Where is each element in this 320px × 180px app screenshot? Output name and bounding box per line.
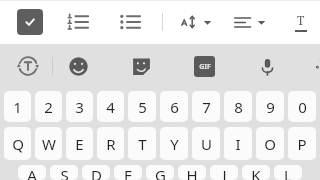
staticText: 9: [266, 97, 275, 117]
staticText: U: [201, 134, 212, 154]
button[interactable]: 6: [160, 91, 188, 122]
button[interactable]: E: [66, 127, 93, 160]
button[interactable]: Text size: [178, 8, 213, 36]
button[interactable]: W: [35, 127, 62, 160]
button[interactable]: Numbered list: [64, 8, 92, 36]
button[interactable]: I: [224, 127, 252, 160]
button[interactable]: 2: [35, 91, 62, 122]
staticText: T: [297, 12, 305, 28]
button[interactable]: 5: [128, 91, 156, 122]
button[interactable]: S: [50, 165, 78, 180]
staticText: 0: [298, 97, 307, 117]
button[interactable]: Y: [160, 127, 188, 160]
staticText: I: [235, 134, 241, 154]
staticText: 5: [138, 97, 147, 117]
staticText: 4: [106, 97, 115, 117]
staticText: F: [124, 165, 132, 180]
button[interactable]: G: [146, 165, 174, 180]
staticText: 3: [75, 97, 84, 117]
button[interactable]: O: [256, 127, 284, 160]
button[interactable]: K: [242, 165, 270, 180]
button[interactable]: 4: [97, 91, 124, 122]
staticText: K: [251, 165, 261, 180]
button[interactable]: GIF: [191, 53, 218, 80]
button[interactable]: 3: [66, 91, 93, 122]
staticText: G: [155, 165, 166, 180]
staticText: 2: [44, 97, 53, 117]
button[interactable]: L: [274, 165, 302, 180]
button[interactable]: T: [128, 127, 156, 160]
staticText: A: [27, 165, 37, 180]
button[interactable]: P: [288, 127, 316, 160]
button[interactable]: Alignment: [233, 9, 267, 36]
button[interactable]: Bulleted list: [116, 8, 144, 36]
button[interactable]: Translate: [14, 52, 42, 80]
button[interactable]: 8: [224, 91, 252, 122]
staticText: J: [222, 165, 227, 180]
staticText: L: [284, 165, 292, 180]
button[interactable]: D: [82, 165, 110, 180]
staticText: 8: [234, 97, 243, 117]
staticText: D: [91, 165, 102, 180]
button[interactable]: 7: [192, 91, 220, 122]
button[interactable]: Voice input: [254, 53, 281, 80]
button[interactable]: Emoji: [65, 53, 92, 80]
staticText: Q: [12, 134, 24, 154]
staticText: GIF: [199, 62, 211, 72]
staticText: P: [297, 134, 307, 154]
staticText: 1: [13, 97, 22, 117]
button[interactable]: A: [18, 165, 46, 180]
staticText: 6: [170, 97, 179, 117]
button[interactable]: 9: [256, 91, 284, 122]
button[interactable]: 1: [4, 91, 31, 122]
staticText: 7: [202, 97, 211, 117]
staticText: S: [60, 165, 69, 180]
button[interactable]: U: [192, 127, 220, 160]
button[interactable]: J: [210, 165, 238, 180]
staticText: O: [264, 134, 276, 154]
staticText: W: [42, 134, 56, 154]
staticText: E: [75, 134, 84, 154]
staticText: R: [106, 134, 116, 154]
button[interactable]: Checklist: [14, 6, 46, 38]
button[interactable]: Settings: [315, 52, 320, 80]
button[interactable]: Text color: [288, 9, 314, 35]
button[interactable]: Q: [4, 127, 31, 160]
button[interactable]: R: [97, 127, 124, 160]
staticText: H: [186, 165, 198, 180]
staticText: T: [138, 134, 147, 154]
button[interactable]: H: [178, 165, 206, 180]
button[interactable]: 0: [288, 91, 316, 122]
button[interactable]: Stickers: [128, 53, 155, 80]
staticText: Y: [170, 134, 179, 154]
button[interactable]: F: [114, 165, 142, 180]
